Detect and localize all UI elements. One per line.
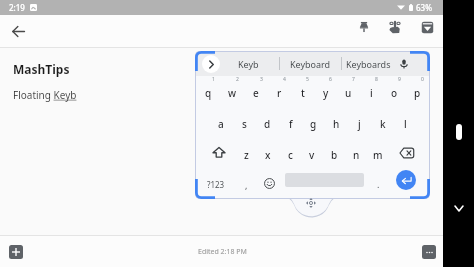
button[interactable]: k	[371, 106, 394, 137]
staticText: Keyboard	[290, 58, 331, 70]
staticText: a	[218, 117, 224, 131]
button[interactable]: .	[368, 168, 388, 199]
button[interactable]: Voice input	[393, 51, 415, 76]
staticText: t	[301, 86, 305, 100]
button[interactable]: Keyboards	[342, 51, 395, 76]
staticText: ,	[245, 179, 248, 191]
button[interactable]: e	[244, 76, 268, 106]
button[interactable]: Keyboard	[280, 51, 340, 76]
button[interactable]: n	[345, 137, 367, 168]
staticText: q	[205, 86, 212, 100]
staticText: d	[264, 117, 271, 131]
staticText: u	[345, 86, 352, 100]
staticText: 1	[212, 76, 215, 83]
button[interactable]: l	[394, 106, 417, 137]
staticText: Floating Keyb	[13, 88, 77, 102]
staticText: y	[323, 86, 329, 100]
staticText: v	[309, 148, 315, 162]
staticText: p	[414, 86, 421, 100]
button[interactable]: Move keyboard	[305, 197, 317, 209]
button[interactable]: p	[406, 76, 429, 106]
button[interactable]: v	[301, 137, 323, 168]
button[interactable]: w	[220, 76, 244, 106]
staticText: x	[265, 148, 271, 162]
button[interactable]: c	[279, 137, 301, 168]
button[interactable]: Keyb	[217, 51, 279, 76]
button[interactable]: u	[337, 76, 360, 106]
staticText: ?123	[207, 179, 225, 190]
button[interactable]: m	[367, 137, 389, 168]
button[interactable]: Home	[456, 124, 462, 140]
button[interactable]: Reminder	[383, 15, 407, 39]
button[interactable]: d	[256, 106, 279, 137]
staticText: g	[310, 117, 317, 131]
staticText: 63%	[416, 2, 432, 13]
staticText: Keyb	[238, 58, 259, 70]
staticText: c	[288, 148, 293, 162]
button[interactable]: x	[257, 137, 279, 168]
button[interactable]: Enter	[396, 170, 416, 190]
button[interactable]: s	[233, 106, 256, 137]
button[interactable]: r	[268, 76, 291, 106]
staticText: s	[242, 117, 247, 131]
button[interactable]: i	[360, 76, 383, 106]
staticText: 0	[421, 76, 424, 83]
staticText: j	[358, 117, 361, 131]
staticText: r	[277, 86, 282, 100]
button[interactable]: Archive	[415, 15, 439, 39]
staticText: Keyboards	[346, 58, 391, 70]
button[interactable]: ?123	[200, 168, 232, 199]
staticText: w	[228, 86, 237, 100]
button[interactable]: Back	[6, 19, 30, 43]
button[interactable]: o	[383, 76, 406, 106]
staticText: MashTips	[13, 61, 70, 77]
staticText: 7	[352, 76, 355, 83]
button[interactable]: Add	[9, 245, 23, 259]
button[interactable]: Expand suggestions	[202, 55, 220, 73]
button[interactable]: ,	[236, 168, 256, 199]
button[interactable]: Backspace	[390, 137, 423, 168]
button[interactable]: t	[291, 76, 314, 106]
button[interactable]: f	[279, 106, 302, 137]
staticText: i	[370, 86, 373, 100]
button[interactable]: More options	[422, 245, 436, 259]
staticText: 2:19	[9, 2, 25, 13]
staticText: z	[244, 148, 249, 162]
button[interactable]: b	[323, 137, 345, 168]
staticText: m	[373, 148, 383, 162]
button[interactable]: g	[302, 106, 325, 137]
staticText: 6	[329, 76, 332, 83]
button[interactable]: a	[209, 106, 233, 137]
button[interactable]: h	[325, 106, 348, 137]
staticText: e	[253, 86, 259, 100]
staticText: 5	[306, 76, 309, 83]
staticText: 9	[398, 76, 401, 83]
staticText: k	[380, 117, 386, 131]
staticText: 4	[283, 76, 286, 83]
staticText: l	[404, 117, 407, 131]
button[interactable]: Emoji	[258, 168, 280, 199]
button[interactable]: Shift	[202, 137, 235, 168]
staticText: 3	[260, 76, 263, 83]
staticText: f	[289, 117, 293, 131]
button[interactable]: q	[196, 76, 220, 106]
button[interactable]: j	[348, 106, 371, 137]
staticText: .	[377, 178, 380, 190]
button[interactable]: Pin	[352, 15, 376, 39]
button[interactable]: Back	[450, 199, 468, 217]
staticText: o	[391, 86, 398, 100]
staticText: b	[331, 148, 338, 162]
button[interactable]: y	[314, 76, 337, 106]
button[interactable]: z	[235, 137, 257, 168]
staticText: h	[333, 117, 340, 131]
staticText: n	[353, 148, 360, 162]
staticText: 8	[375, 76, 378, 83]
staticText: 2	[236, 76, 239, 83]
staticText: Edited 2:18 PM	[198, 247, 247, 257]
